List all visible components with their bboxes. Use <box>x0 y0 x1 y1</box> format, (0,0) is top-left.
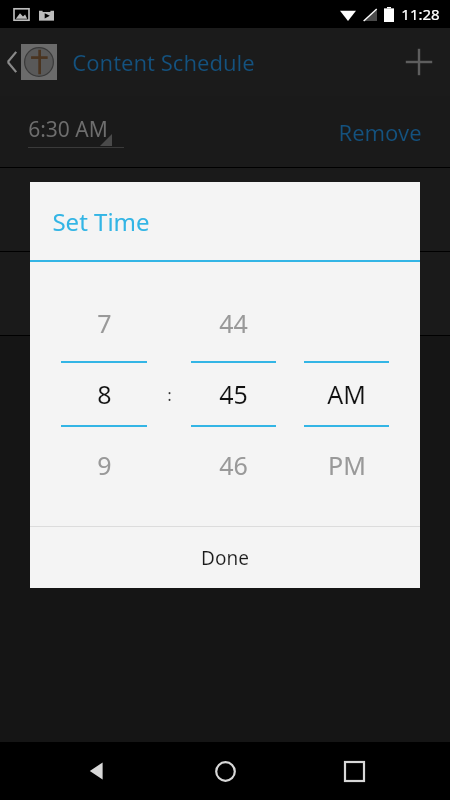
staticText: 8 <box>97 377 112 411</box>
staticText: Done <box>201 545 249 571</box>
button[interactable]: AM <box>297 285 396 503</box>
staticText: : <box>167 383 172 406</box>
button[interactable]: Home <box>193 742 257 800</box>
staticText: AM <box>327 377 366 411</box>
staticText: Remove <box>338 117 422 147</box>
staticText: 7 <box>97 306 112 340</box>
staticText: PM <box>328 448 366 482</box>
staticText: 9 <box>97 448 112 482</box>
button[interactable]: Back <box>65 742 129 800</box>
staticText: 46 <box>219 448 248 482</box>
button[interactable]: 7 <box>54 285 154 503</box>
button[interactable]: 44 <box>184 285 283 503</box>
button[interactable]: Back <box>0 28 62 96</box>
staticText: 44 <box>219 306 248 340</box>
staticText: Content Schedule <box>72 47 255 77</box>
button[interactable]: Done <box>30 527 420 588</box>
staticText: 45 <box>219 377 248 411</box>
staticText: 6:30 AM <box>28 115 108 144</box>
staticText: Set Time <box>52 205 150 238</box>
button[interactable]: Recents <box>322 742 386 800</box>
staticText: 11:28 <box>401 4 440 24</box>
button[interactable]: Add <box>388 28 450 96</box>
